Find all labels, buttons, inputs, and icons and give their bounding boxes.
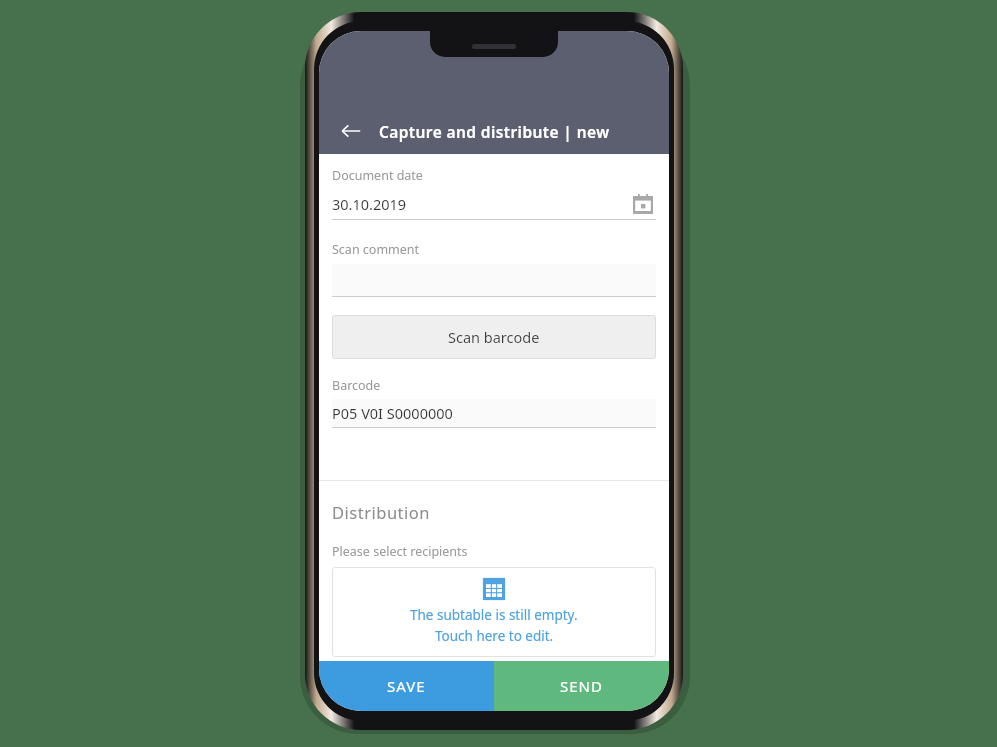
staticText: Scan comment <box>332 241 420 258</box>
button[interactable]: P05 V0I S0000000 <box>332 399 656 427</box>
staticText: SEND <box>560 676 603 696</box>
button[interactable]: Back <box>331 111 371 151</box>
staticText: Capture and distribute | new <box>379 121 610 142</box>
staticText: P05 V0I S0000000 <box>332 403 453 423</box>
staticText: Document date <box>332 167 423 184</box>
button[interactable]: SEND <box>494 661 669 711</box>
staticText: Touch here to edit. <box>435 627 554 645</box>
staticText: Scan barcode <box>448 327 540 347</box>
staticText: 30.10.2019 <box>332 194 407 214</box>
staticText: Distribution <box>332 501 430 523</box>
staticText: Please select recipients <box>332 543 468 560</box>
staticText: SAVE <box>387 676 426 696</box>
other: Pick date <box>630 191 656 217</box>
button[interactable]: SAVE <box>319 661 494 711</box>
button[interactable]: 30.10.2019 <box>332 189 656 219</box>
staticText: The subtable is still empty. <box>410 606 578 624</box>
button[interactable]: Scan barcode <box>332 315 656 359</box>
button[interactable]: The subtable is still empty. <box>332 567 656 657</box>
staticText: Barcode <box>332 377 381 394</box>
